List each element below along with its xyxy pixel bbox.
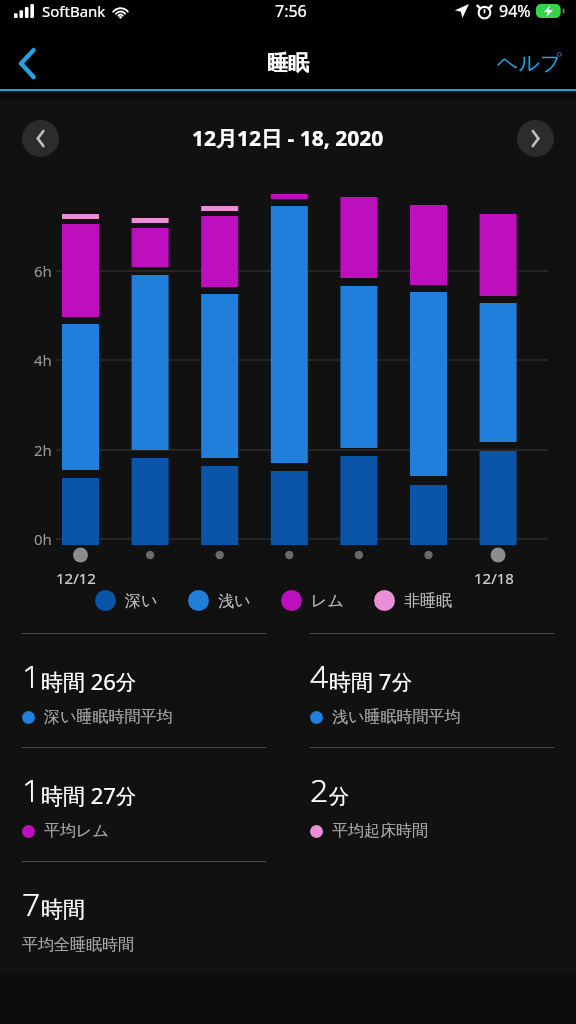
staticText: 浅い睡眠時間平均 bbox=[332, 707, 461, 727]
button[interactable]: ヘルプ bbox=[497, 50, 562, 76]
staticText: 分 bbox=[116, 670, 136, 695]
staticText: 時間 bbox=[41, 896, 85, 924]
staticText: 深い bbox=[125, 591, 158, 611]
staticText: 2 bbox=[310, 768, 329, 812]
staticText: 7 bbox=[22, 882, 41, 926]
staticText: ヘルプ bbox=[497, 50, 562, 76]
staticText: レム bbox=[311, 591, 344, 611]
button[interactable]: Next week bbox=[517, 120, 554, 157]
staticText: 4h bbox=[34, 350, 52, 370]
staticText: 0h bbox=[34, 529, 52, 549]
staticText: 分 bbox=[392, 670, 412, 695]
staticText: 12/18 bbox=[474, 568, 514, 588]
button[interactable]: 深い bbox=[95, 590, 158, 611]
staticText: 分 bbox=[329, 784, 349, 809]
button[interactable]: 4 bbox=[310, 633, 554, 747]
staticText: 94% bbox=[499, 0, 531, 22]
button[interactable]: Previous week bbox=[22, 120, 59, 157]
staticText: 深い睡眠時間平均 bbox=[44, 707, 173, 727]
staticText: 1 bbox=[22, 768, 41, 812]
staticText: SoftBank bbox=[42, 1, 106, 21]
staticText: 分 bbox=[116, 784, 136, 809]
staticText: 時間 26 bbox=[41, 666, 116, 696]
button[interactable]: 2 bbox=[310, 747, 554, 861]
staticText: 非睡眠 bbox=[404, 591, 452, 611]
staticText: 浅い bbox=[218, 591, 251, 611]
staticText: 2h bbox=[34, 440, 52, 460]
staticText: 6h bbox=[34, 261, 52, 281]
button[interactable]: レム bbox=[281, 590, 344, 611]
staticText: 平均全睡眠時間 bbox=[22, 935, 134, 955]
staticText: 12/12 bbox=[56, 568, 96, 588]
button[interactable]: 浅い bbox=[188, 590, 251, 611]
staticText: 4 bbox=[310, 654, 329, 698]
staticText: 時間 7 bbox=[329, 666, 392, 696]
button[interactable]: Back bbox=[4, 40, 50, 86]
staticText: 12月12日 - 18, 2020 bbox=[192, 124, 384, 153]
staticText: 時間 27 bbox=[41, 780, 116, 810]
staticText: 睡眠 bbox=[267, 50, 309, 76]
button[interactable]: 1 bbox=[22, 633, 266, 747]
staticText: 平均起床時間 bbox=[332, 821, 428, 841]
button[interactable]: 非睡眠 bbox=[374, 590, 452, 611]
staticText: 7:56 bbox=[275, 0, 307, 22]
button[interactable]: 1 bbox=[22, 747, 266, 861]
staticText: 1 bbox=[22, 654, 41, 698]
staticText: 平均レム bbox=[44, 821, 109, 841]
button[interactable]: 7 bbox=[22, 861, 266, 975]
